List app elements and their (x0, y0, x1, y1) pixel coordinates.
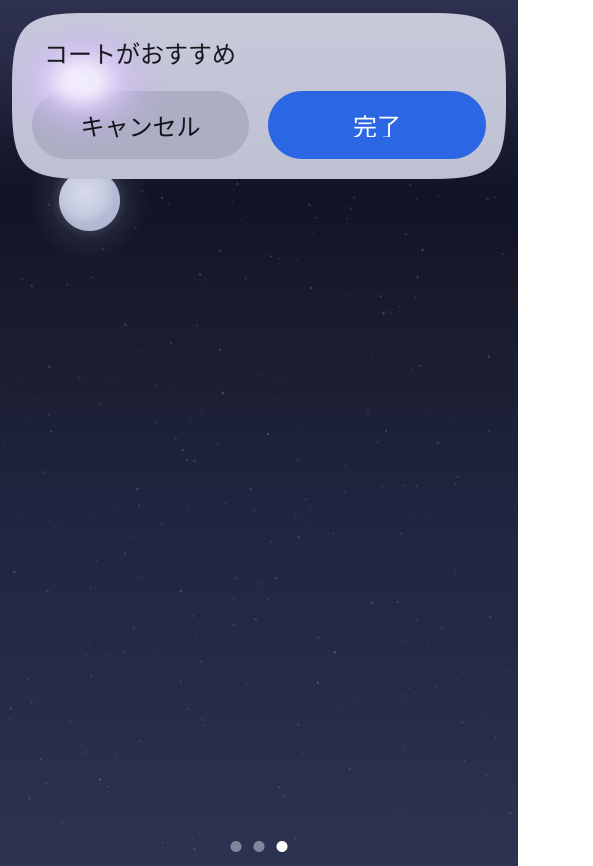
button[interactable]: 完了 (268, 91, 486, 159)
staticText: キャンセル (80, 108, 200, 142)
button[interactable] (32, 91, 249, 159)
staticText: 完了 (353, 108, 401, 142)
staticText: コートがおすすめ (44, 35, 236, 70)
